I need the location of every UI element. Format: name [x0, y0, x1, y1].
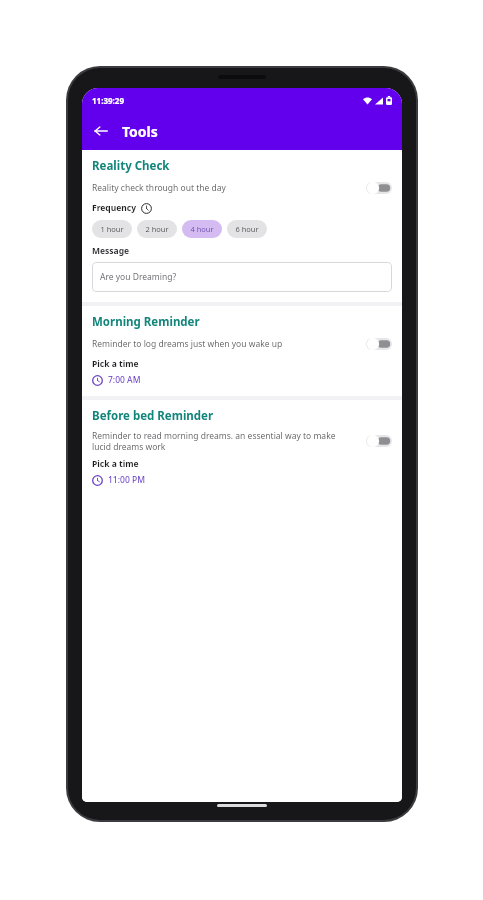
staticText: Tools: [122, 122, 158, 141]
staticText: Morning Reminder: [92, 314, 200, 330]
staticText: Reality check through out the day: [92, 182, 366, 194]
staticText: 11:00 PM: [108, 474, 145, 486]
staticText: Pick a time: [92, 358, 139, 370]
button[interactable]: Are you Dreaming?: [92, 262, 392, 292]
button[interactable]: 4 hour: [182, 220, 222, 238]
staticText: Are you Dreaming?: [100, 271, 177, 283]
button[interactable]: Toggle: [366, 434, 392, 448]
button[interactable]: 7:00 AM: [92, 374, 141, 386]
button[interactable]: Back: [86, 116, 116, 146]
button[interactable]: Frequency info: [141, 203, 152, 214]
staticText: Reminder to read morning dreams. an esse…: [92, 430, 354, 452]
staticText: Frequency: [92, 202, 137, 214]
button[interactable]: 6 hour: [227, 220, 267, 238]
staticText: 4 hour: [190, 224, 214, 234]
staticText: 2 hour: [145, 224, 169, 234]
button[interactable]: 1 hour: [92, 220, 132, 238]
button[interactable]: Toggle: [366, 337, 392, 351]
staticText: Message: [92, 245, 130, 257]
staticText: 11:39:29: [92, 95, 124, 106]
button[interactable]: 11:00 PM: [92, 474, 145, 486]
staticText: 7:00 AM: [108, 374, 141, 386]
button[interactable]: Toggle: [366, 181, 392, 195]
staticText: Before bed Reminder: [92, 408, 214, 424]
staticText: 1 hour: [100, 224, 124, 234]
staticText: 6 hour: [235, 224, 259, 234]
button[interactable]: 2 hour: [137, 220, 177, 238]
staticText: Reminder to log dreams just when you wak…: [92, 338, 360, 350]
staticText: Reality Check: [92, 158, 170, 174]
staticText: Pick a time: [92, 458, 139, 470]
